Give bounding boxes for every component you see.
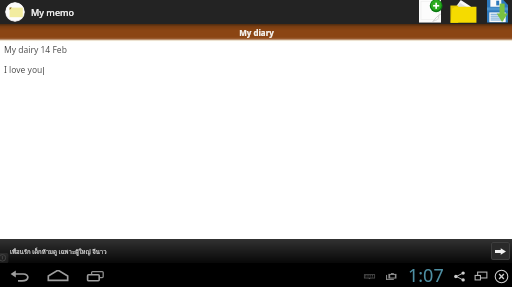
button[interactable]: My memo (5, 2, 25, 22)
staticText: My diary (239, 27, 274, 38)
staticText: My memo (31, 6, 75, 18)
button[interactable]: Share (453, 265, 466, 287)
button[interactable]: Keyboard (363, 265, 376, 287)
button[interactable]: New memo (419, 0, 441, 24)
button[interactable]: Close (494, 265, 509, 287)
button[interactable]: Diary text (0, 39, 512, 239)
button[interactable]: Next (491, 242, 510, 260)
staticText: เพื่อนรัก เด็กห้ามดู เฉพาะผู้ใหญ่ จีนาว (10, 247, 107, 257)
button[interactable]: Screenshot (385, 265, 398, 287)
button[interactable]: Home (47, 265, 69, 287)
button[interactable]: Save memo (487, 0, 508, 24)
staticText: My dairy 14 Feb (4, 44, 67, 56)
staticText: 1:07 (408, 263, 444, 287)
button[interactable]: Window (474, 265, 488, 287)
button[interactable]: Open memo (449, 0, 477, 24)
button[interactable]: Recent apps (86, 265, 106, 287)
staticText: I love you (4, 64, 43, 76)
button[interactable]: Back (10, 265, 30, 287)
